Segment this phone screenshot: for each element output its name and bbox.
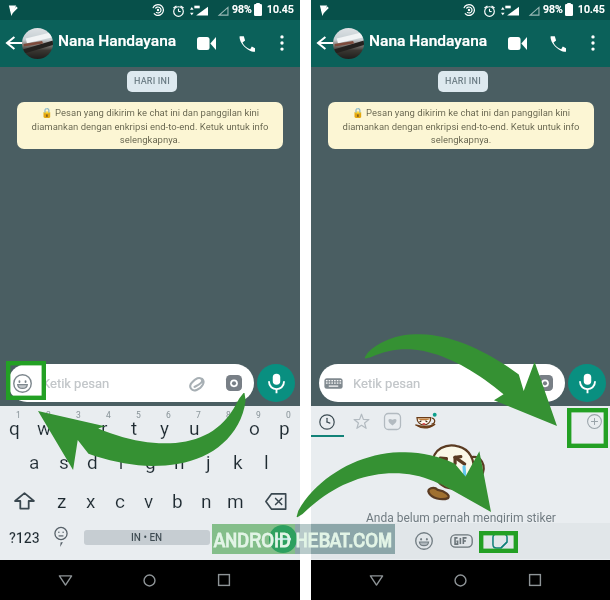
staticText: e <box>69 417 80 439</box>
button[interactable]: Add sticker pack <box>567 408 608 448</box>
button[interactable]: Back <box>313 29 341 57</box>
staticText: HARI INI <box>445 76 481 87</box>
button[interactable]: Voice message <box>257 364 295 402</box>
button[interactable]: Recent apps <box>212 568 236 592</box>
button[interactable]: 8 <box>210 406 240 443</box>
staticText: Anda belum pernah mengirim stiker <box>366 511 556 525</box>
button[interactable]: d <box>78 444 107 480</box>
button[interactable]: l <box>252 444 281 480</box>
staticText: r <box>101 417 108 439</box>
button[interactable]: 6 <box>150 406 180 443</box>
button[interactable]: 2 <box>30 406 60 443</box>
button[interactable]: z <box>47 482 76 520</box>
button[interactable]: a <box>20 444 49 480</box>
button[interactable]: Ketik pesan <box>8 364 254 402</box>
button[interactable]: More options <box>579 29 606 56</box>
staticText: l <box>264 451 269 473</box>
staticText: Ketik pesan <box>42 376 110 391</box>
staticText: 7 <box>196 410 201 420</box>
button[interactable]: HARI INI <box>127 71 177 92</box>
button[interactable]: 5 <box>120 406 150 443</box>
button[interactable]: Coffee sticker pack <box>408 406 441 437</box>
button[interactable]: Emoji keyboard <box>46 521 76 554</box>
staticText: q <box>9 417 20 439</box>
button[interactable]: j <box>194 444 223 480</box>
staticText: ANDROID HEBAT.COM <box>214 526 393 553</box>
staticText: p <box>279 417 290 439</box>
button[interactable]: 0 <box>270 406 300 443</box>
staticText: t <box>131 417 138 439</box>
staticText: i <box>222 417 227 439</box>
button[interactable]: 1 <box>0 406 30 443</box>
button[interactable]: v <box>134 482 163 520</box>
button[interactable]: Backspace <box>256 482 296 520</box>
button[interactable]: m <box>221 482 250 520</box>
staticText: 98% <box>232 3 252 15</box>
button[interactable]: f <box>107 444 136 480</box>
staticText: n <box>201 490 212 512</box>
button[interactable]: Home <box>137 568 161 592</box>
button[interactable]: ?123 <box>4 521 44 554</box>
staticText: z <box>57 490 67 512</box>
button[interactable]: Stickers <box>479 531 518 553</box>
staticText: u <box>189 417 200 439</box>
button[interactable]: IN • EN <box>84 530 210 545</box>
staticText: 10.45 <box>578 3 605 15</box>
button[interactable]: n <box>192 482 221 520</box>
staticText: g <box>145 451 156 473</box>
button[interactable]: Voice call <box>543 29 572 58</box>
button[interactable]: Back <box>2 29 30 57</box>
button[interactable]: 9 <box>240 406 270 443</box>
button[interactable]: b <box>163 482 192 520</box>
staticText: 8 <box>226 410 231 420</box>
button[interactable]: 7 <box>180 406 210 443</box>
button[interactable]: Back <box>364 568 388 592</box>
button[interactable]: g <box>136 444 165 480</box>
staticText: IN • EN <box>131 532 163 544</box>
button[interactable]: Video call <box>192 29 221 58</box>
button[interactable]: Profile photo <box>22 28 53 59</box>
button[interactable]: Video call <box>503 29 532 58</box>
button[interactable]: Ketik pesan <box>319 364 565 402</box>
button[interactable]: Add stickers <box>577 406 610 437</box>
button[interactable]: x <box>76 482 105 520</box>
button[interactable]: s <box>49 444 78 480</box>
button[interactable]: Recent apps <box>523 568 547 592</box>
button[interactable]: HARI INI <box>438 71 488 92</box>
staticText: 3 <box>76 410 81 420</box>
button[interactable]: Stickers <box>480 523 519 559</box>
button[interactable]: Home <box>448 568 472 592</box>
button[interactable]: Recent stickers <box>311 406 344 437</box>
button[interactable]: Voice message <box>568 364 606 402</box>
button[interactable]: Back <box>53 568 77 592</box>
button[interactable]: Voice call <box>232 29 261 58</box>
staticText: 98% <box>543 3 563 15</box>
button[interactable]: c <box>105 482 134 520</box>
staticText: 0 <box>286 410 291 420</box>
button[interactable]: 🔒 Pesan yang dikirim ke chat ini dan pan… <box>17 102 283 149</box>
staticText: d <box>87 451 98 473</box>
button[interactable]: 4 <box>90 406 120 443</box>
staticText: c <box>115 490 125 512</box>
staticText: 10.45 <box>267 3 294 15</box>
button[interactable]: Emoji <box>405 523 442 559</box>
button[interactable]: Heart stickers <box>376 406 408 437</box>
button[interactable]: GIF <box>442 523 480 559</box>
staticText: Nana Handayana <box>369 32 488 50</box>
button[interactable]: More options <box>268 29 295 56</box>
button[interactable]: 🔒 Pesan yang dikirim ke chat ini dan pan… <box>328 102 594 149</box>
staticText: 1 <box>16 410 21 420</box>
button[interactable]: Favourite stickers <box>345 406 377 437</box>
button[interactable]: h <box>165 444 194 480</box>
staticText: w <box>37 417 52 439</box>
button[interactable]: 3 <box>60 406 90 443</box>
staticText: 4 <box>106 410 111 420</box>
staticText: 5 <box>136 410 141 420</box>
button[interactable]: Shift <box>4 482 44 520</box>
button[interactable]: k <box>223 444 252 480</box>
staticText: HARI INI <box>134 76 170 87</box>
button[interactable]: Profile photo <box>333 28 364 59</box>
staticText: 🔒 Pesan yang dikirim ke chat ini dan pan… <box>342 107 580 145</box>
button[interactable]: Emoji <box>6 361 46 400</box>
staticText: b <box>172 490 183 512</box>
